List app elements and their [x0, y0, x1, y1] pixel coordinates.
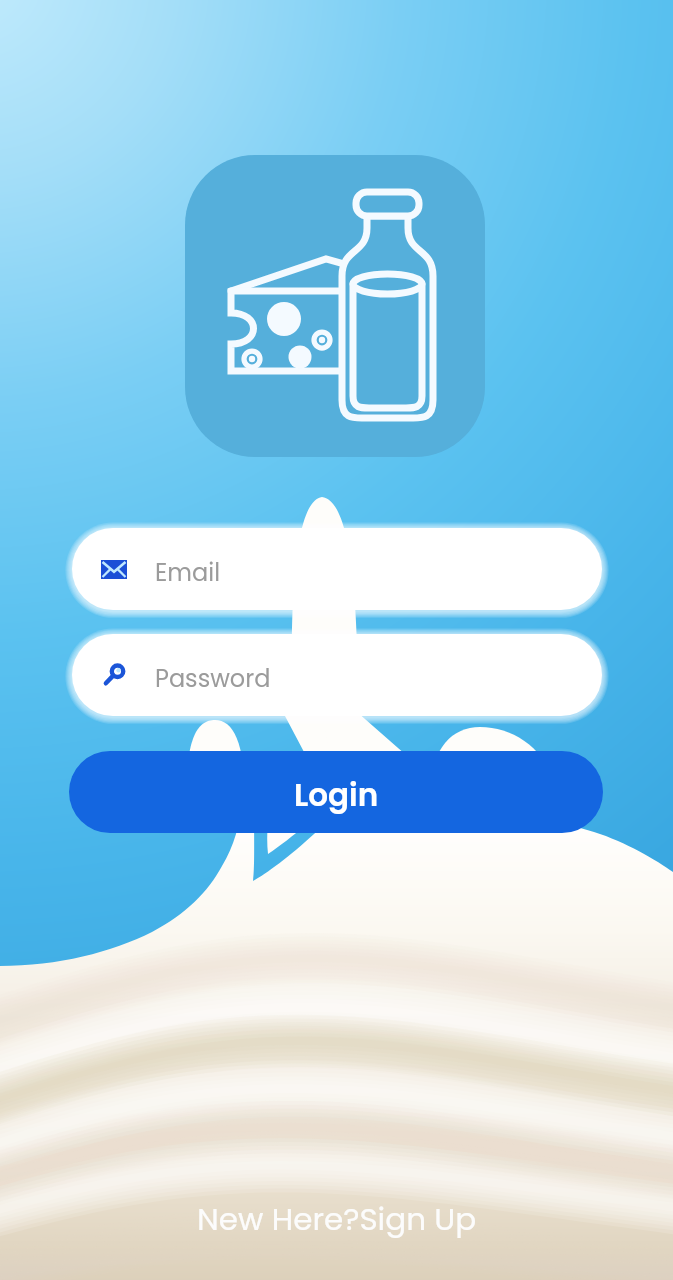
button[interactable]: Email	[72, 528, 602, 610]
staticText: Email	[155, 556, 221, 590]
button[interactable]: Login	[69, 751, 603, 833]
button[interactable]: New Here?Sign Up	[197, 1197, 477, 1240]
staticText: Password	[155, 662, 271, 696]
button[interactable]: Password	[72, 634, 602, 716]
staticText: Login	[294, 773, 379, 816]
staticText: New Here?Sign Up	[197, 1197, 477, 1240]
